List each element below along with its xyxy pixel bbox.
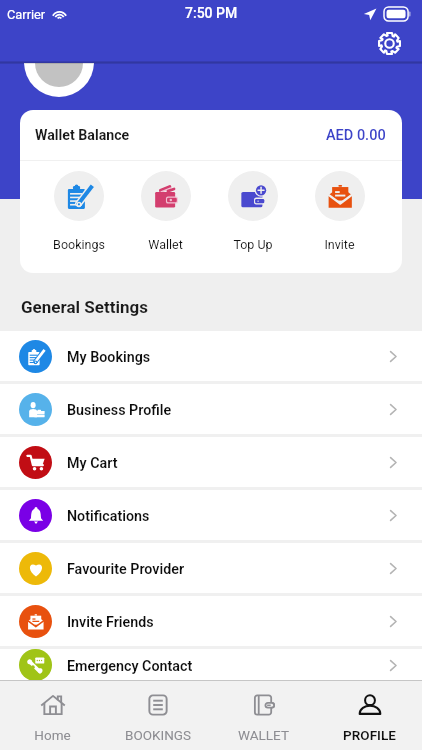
staticText: Notifications — [67, 508, 150, 525]
staticText: Bookings — [53, 237, 105, 252]
staticText: BOOKINGS — [125, 727, 191, 743]
staticText: My Cart — [67, 455, 118, 472]
button[interactable]: Favourite Provider — [0, 543, 422, 593]
button[interactable]: My Cart — [0, 437, 422, 487]
button[interactable]: My Bookings — [0, 331, 422, 381]
staticText: Invite — [324, 237, 355, 252]
button[interactable]: Business Profile — [0, 384, 422, 434]
button[interactable]: Top Up — [209, 171, 296, 252]
button[interactable]: Notifications — [0, 490, 422, 540]
staticText: Emergency Contact — [67, 658, 193, 675]
staticText: 7:50 PM — [185, 5, 238, 21]
button[interactable]: BOOKINGS — [105, 681, 210, 750]
staticText: Wallet Balance — [35, 127, 130, 144]
button[interactable]: Settings — [372, 26, 406, 60]
button[interactable]: WALLET — [210, 681, 316, 750]
button[interactable]: Bookings — [35, 171, 122, 252]
staticText: WALLET — [238, 727, 289, 743]
staticText: Wallet — [148, 237, 183, 252]
button[interactable]: Emergency Contact — [0, 649, 422, 681]
button[interactable]: PROFILE — [316, 681, 422, 750]
staticText: My Bookings — [67, 349, 151, 366]
button[interactable]: Invite — [296, 171, 383, 252]
button[interactable]: Invite Friends — [0, 596, 422, 646]
staticText: Business Profile — [67, 402, 172, 419]
staticText: General Settings — [21, 297, 148, 317]
staticText: Home — [34, 727, 71, 743]
staticText: AED 0.00 — [326, 127, 386, 144]
staticText: Carrier — [7, 7, 46, 22]
staticText: Top Up — [233, 237, 273, 252]
button[interactable]: Home — [0, 681, 105, 750]
staticText: Invite Friends — [67, 614, 154, 631]
staticText: PROFILE — [343, 727, 396, 743]
staticText: Favourite Provider — [67, 561, 185, 578]
button[interactable]: Wallet — [122, 171, 209, 252]
